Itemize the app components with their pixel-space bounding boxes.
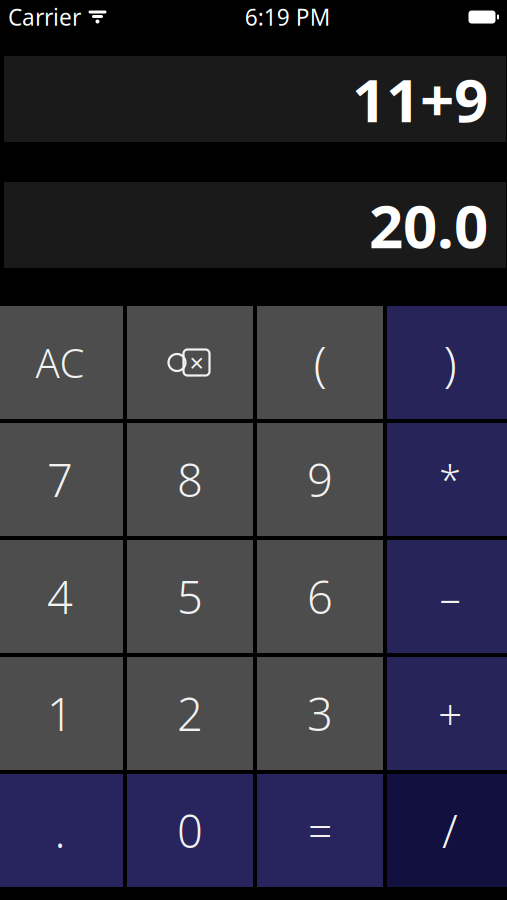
button[interactable]: + — [387, 657, 507, 770]
button[interactable]: – — [387, 540, 507, 653]
staticText: . — [54, 800, 65, 861]
button[interactable]: ( — [257, 306, 383, 419]
button[interactable]: / — [387, 774, 507, 887]
staticText: 3 — [307, 683, 333, 744]
staticText: + — [438, 685, 462, 742]
button[interactable]: 3 — [257, 657, 383, 770]
staticText: Carrier — [8, 2, 81, 32]
button[interactable]: 6 — [257, 540, 383, 653]
button[interactable]: Delete — [127, 306, 253, 419]
button[interactable]: 1 — [0, 657, 123, 770]
staticText: × — [189, 346, 203, 379]
button[interactable]: = — [257, 774, 383, 887]
button[interactable]: 4 — [0, 540, 123, 653]
staticText: ( — [313, 331, 326, 394]
staticText: 2 — [177, 683, 203, 744]
staticText: 0 — [177, 800, 203, 861]
button[interactable]: 2 — [127, 657, 253, 770]
staticText: 6 — [307, 566, 333, 627]
button[interactable]: 0 — [127, 774, 253, 887]
staticText: AC — [35, 336, 84, 389]
staticText: 6:19 PM — [245, 2, 331, 32]
staticText: 7 — [47, 449, 73, 510]
staticText: / — [442, 800, 458, 861]
staticText: * — [439, 453, 461, 506]
staticText: 5 — [177, 566, 203, 627]
button[interactable]: 5 — [127, 540, 253, 653]
staticText: 4 — [47, 566, 73, 627]
button[interactable]: ) — [387, 306, 507, 419]
staticText: 1 — [47, 683, 73, 744]
staticText: 20.0 — [369, 185, 488, 265]
staticText: 9 — [307, 449, 333, 510]
button[interactable]: 8 — [127, 423, 253, 536]
button[interactable]: 7 — [0, 423, 123, 536]
staticText: = — [308, 802, 332, 859]
button[interactable]: AC — [0, 306, 123, 419]
staticText: ) — [443, 331, 456, 394]
staticText: 8 — [177, 449, 203, 510]
staticText: 11+9 — [352, 59, 488, 139]
button[interactable]: * — [387, 423, 507, 536]
button[interactable]: 9 — [257, 423, 383, 536]
button[interactable]: . — [0, 774, 123, 887]
staticText: – — [439, 568, 460, 625]
